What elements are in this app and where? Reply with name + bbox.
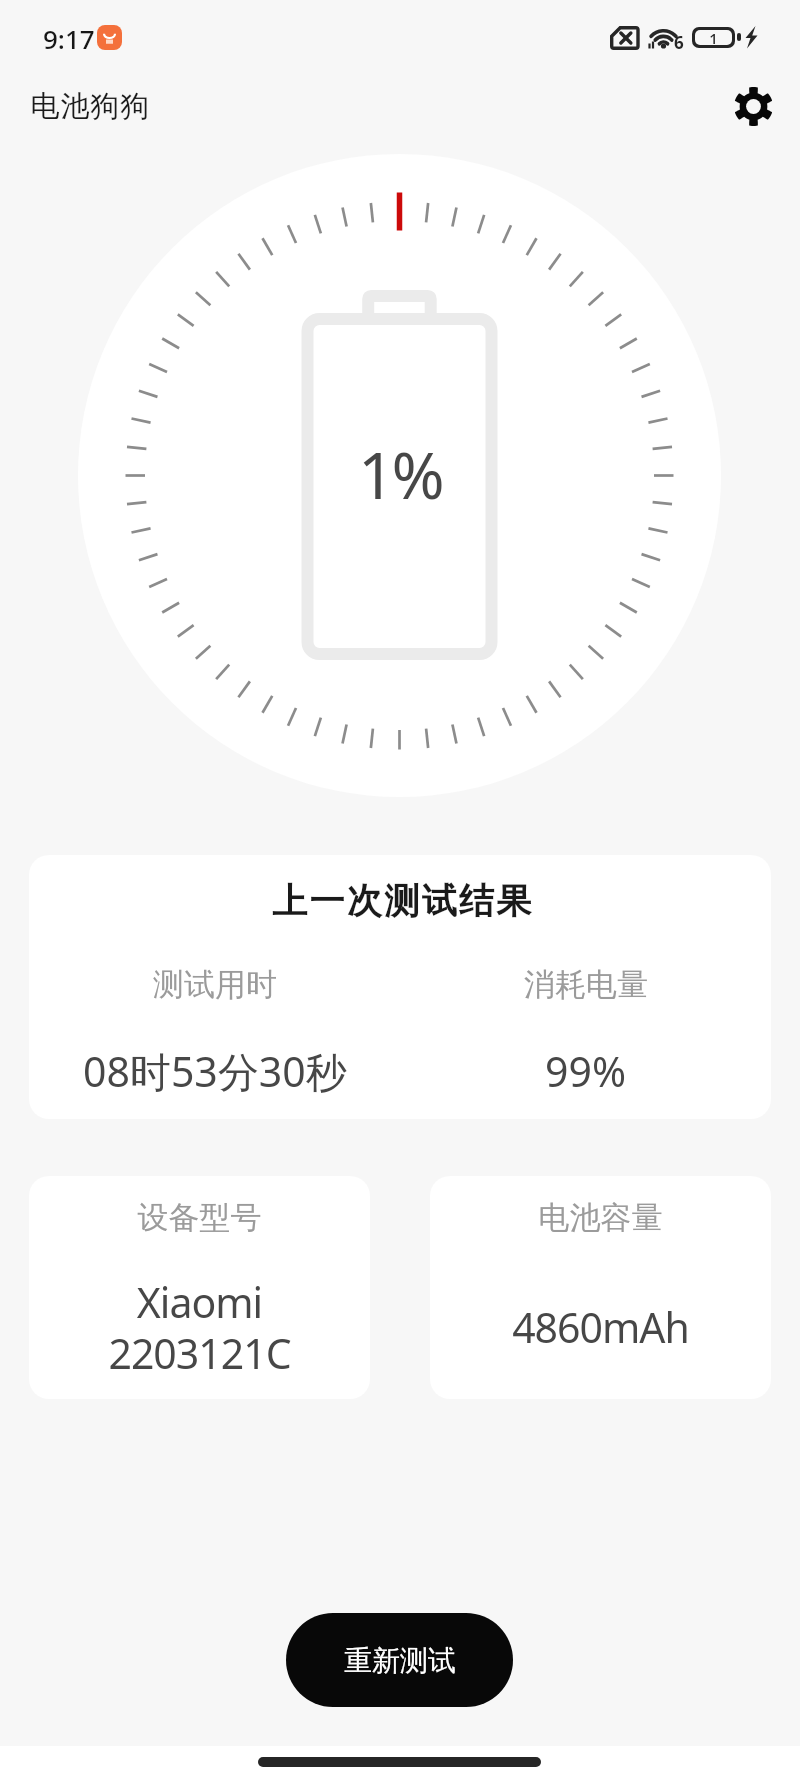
button[interactable]: 电池容量 [430, 1176, 771, 1399]
staticText: Xiaomi 2203121C [29, 1274, 370, 1381]
staticText: 4860mAh [430, 1299, 771, 1355]
staticText: 上一次测试结果 [32, 879, 771, 923]
staticText: 测试用时 [153, 965, 277, 1004]
staticText: 6 [674, 31, 684, 54]
staticText: 08时53分30秒 [83, 1043, 347, 1099]
staticText: 1% [358, 431, 442, 518]
button[interactable]: 设备型号 [29, 1176, 370, 1399]
button[interactable]: 上一次测试结果 [29, 855, 771, 1119]
button[interactable]: 重新测试 [286, 1613, 513, 1707]
staticText: 99% [545, 1043, 626, 1099]
button[interactable]: Settings [724, 77, 782, 135]
staticText: 9:17 [43, 21, 95, 56]
staticText: 1 [709, 30, 719, 44]
staticText: 电池狗狗 [30, 88, 150, 125]
staticText: 电池容量 [430, 1198, 771, 1237]
staticText: 设备型号 [29, 1198, 370, 1237]
staticText: 重新测试 [344, 1643, 456, 1678]
staticText: 消耗电量 [524, 965, 648, 1004]
